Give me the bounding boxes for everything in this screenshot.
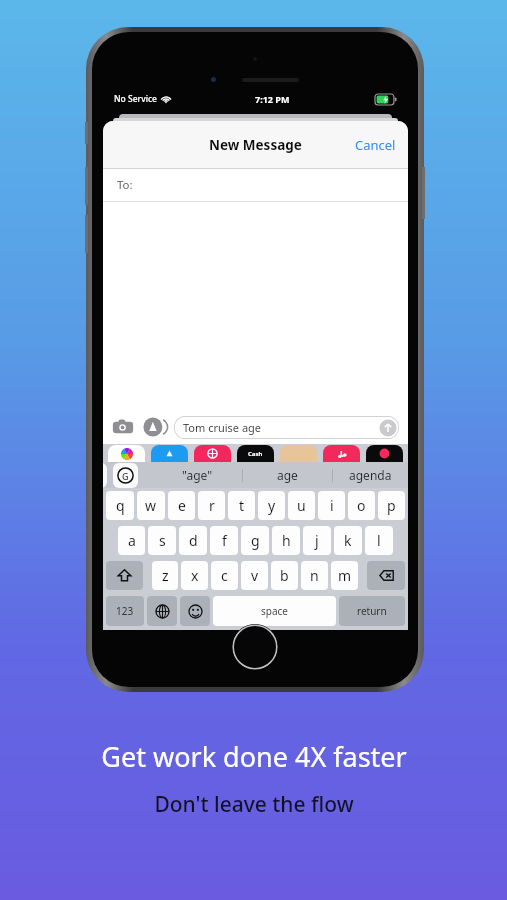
button[interactable]: p — [378, 491, 405, 520]
button[interactable]: Assistant G — [113, 463, 138, 488]
staticText: y — [268, 496, 276, 515]
button[interactable]: w — [137, 491, 165, 520]
staticText: Tom cruise age — [183, 420, 262, 435]
button[interactable]: n — [301, 561, 328, 590]
staticText: x — [191, 566, 199, 585]
button[interactable]: age — [243, 462, 332, 488]
button[interactable]: space — [213, 596, 336, 626]
button[interactable]: a — [118, 526, 145, 555]
staticText: o — [357, 496, 366, 515]
staticText: return — [357, 604, 387, 618]
button[interactable]: v — [241, 561, 268, 590]
button[interactable]: To: — [103, 169, 408, 201]
button[interactable]: agenda — [333, 462, 408, 488]
button[interactable]: t — [228, 491, 255, 520]
button[interactable]: App 5 — [323, 445, 360, 462]
staticText: t — [239, 496, 245, 515]
button[interactable]: Assistant W — [103, 463, 107, 488]
button[interactable]: Camera — [112, 416, 134, 438]
staticText: 7:12 PM — [255, 93, 290, 105]
button[interactable]: Change keyboard — [147, 596, 177, 626]
button[interactable]: App 4 — [280, 445, 317, 462]
staticText: p — [387, 496, 396, 515]
staticText: agenda — [349, 467, 392, 483]
staticText: j — [315, 531, 319, 550]
button[interactable]: App Store — [143, 416, 165, 438]
staticText: n — [310, 566, 319, 585]
button[interactable]: z — [152, 561, 178, 590]
staticText: space — [261, 604, 288, 618]
staticText: d — [189, 531, 198, 550]
staticText: "age" — [182, 467, 213, 483]
button[interactable]: App 2 — [194, 445, 231, 462]
staticText: v — [251, 566, 259, 585]
button[interactable]: m — [331, 561, 358, 590]
button[interactable]: Tom cruise age — [174, 416, 399, 439]
staticText: G — [122, 470, 129, 482]
staticText: q — [116, 496, 125, 515]
staticText: i — [330, 496, 334, 515]
button[interactable]: Cancel — [343, 128, 408, 162]
staticText: g — [251, 531, 260, 550]
staticText: Cancel — [355, 136, 396, 154]
button[interactable]: h — [272, 526, 300, 555]
button[interactable]: "age" — [153, 462, 242, 488]
staticText: a — [128, 531, 136, 550]
button[interactable]: x — [181, 561, 208, 590]
staticText: c — [221, 566, 228, 585]
button[interactable]: j — [303, 526, 331, 555]
button[interactable]: o — [348, 491, 375, 520]
staticText: r — [209, 496, 215, 515]
button[interactable]: d — [179, 526, 207, 555]
button[interactable]: b — [271, 561, 298, 590]
button[interactable]: s — [148, 526, 176, 555]
staticText: Cash — [248, 450, 263, 458]
button[interactable]: App 1 — [151, 445, 188, 462]
staticText: w — [145, 496, 157, 515]
staticText: b — [280, 566, 289, 585]
staticText: z — [162, 566, 169, 585]
button[interactable]: r — [198, 491, 225, 520]
button[interactable]: y — [258, 491, 285, 520]
button[interactable]: App 0 — [108, 445, 145, 462]
button[interactable]: q — [106, 491, 134, 520]
button[interactable]: return — [339, 596, 405, 626]
button[interactable]: Emoji — [180, 596, 210, 626]
button[interactable]: App 3 — [237, 445, 274, 462]
button[interactable]: f — [210, 526, 238, 555]
staticText: age — [277, 467, 298, 483]
button[interactable]: App 6 — [366, 445, 403, 462]
button[interactable]: Backspace — [367, 561, 405, 590]
button[interactable]: c — [211, 561, 238, 590]
button[interactable]: 123 — [106, 596, 144, 626]
staticText: New Message — [209, 136, 302, 154]
staticText: To: — [117, 177, 133, 193]
button[interactable]: Shift — [106, 561, 143, 590]
staticText: No Service — [114, 93, 157, 105]
button[interactable]: u — [288, 491, 315, 520]
staticText: 123 — [116, 604, 134, 618]
staticText: h — [282, 531, 291, 550]
staticText: m — [338, 566, 352, 585]
button[interactable]: e — [168, 491, 195, 520]
staticText: Don't leave the flow — [154, 790, 354, 819]
staticText: l — [377, 531, 381, 550]
staticText: k — [344, 531, 352, 550]
staticText: u — [297, 496, 306, 515]
staticText: e — [178, 496, 186, 515]
staticText: f — [222, 531, 227, 550]
button[interactable]: k — [334, 526, 362, 555]
button[interactable]: i — [318, 491, 345, 520]
button[interactable]: l — [365, 526, 393, 555]
staticText: s — [159, 531, 166, 550]
button[interactable]: Send — [379, 419, 397, 437]
staticText: Get work done 4X faster — [101, 738, 407, 775]
button[interactable]: g — [241, 526, 269, 555]
